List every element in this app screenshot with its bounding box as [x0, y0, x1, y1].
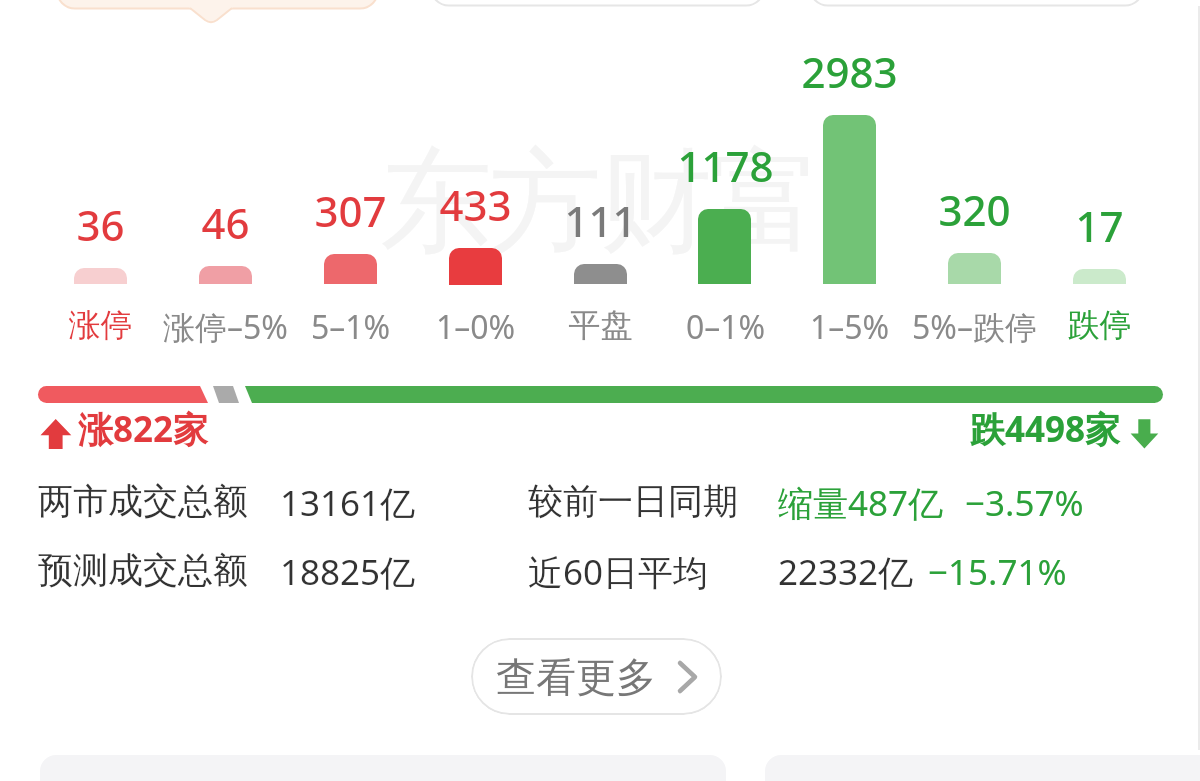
staticText: 320: [912, 181, 1037, 238]
staticText: 1178: [663, 137, 788, 194]
staticText: 13161亿: [280, 479, 580, 527]
staticText: 5%–跌停: [892, 305, 1057, 349]
staticText: 2983: [787, 43, 912, 100]
staticText: 36: [38, 196, 163, 253]
staticText: 5–1%: [268, 305, 433, 349]
staticText: 307: [288, 182, 413, 239]
staticText: 111: [538, 192, 663, 249]
staticText: 较前一日同期: [528, 479, 928, 523]
staticText: 涨822家: [78, 405, 478, 453]
staticText: 433: [413, 176, 538, 233]
staticText: 预测成交总额: [38, 548, 438, 592]
staticText: 东方财富: [0, 132, 1200, 273]
staticText: 17: [1037, 197, 1162, 254]
staticText: 跌4498家: [920, 405, 1120, 453]
staticText: 1–0%: [393, 305, 558, 349]
staticText: 缩量487亿: [778, 479, 1078, 527]
staticText: 近60日平均: [528, 548, 928, 596]
staticText: 跌停: [1017, 305, 1182, 345]
staticText: 涨停–5%: [143, 305, 308, 349]
staticText: −15.71%: [928, 548, 1200, 596]
staticText: 涨停: [18, 305, 183, 345]
staticText: 46: [163, 194, 288, 251]
staticText: 平盘: [518, 305, 683, 345]
button[interactable]: [57, 0, 378, 24]
staticText: 查看更多: [496, 652, 656, 702]
staticText: 1–5%: [767, 305, 932, 349]
staticText: 18825亿: [280, 548, 580, 596]
staticText: 0–1%: [643, 305, 808, 349]
staticText: −3.57%: [965, 479, 1200, 527]
button[interactable]: [431, 0, 764, 6]
staticText: 22332亿: [778, 548, 1078, 596]
staticText: 两市成交总额: [38, 479, 438, 523]
button[interactable]: 查看更多: [471, 638, 722, 715]
button[interactable]: [810, 0, 1143, 6]
